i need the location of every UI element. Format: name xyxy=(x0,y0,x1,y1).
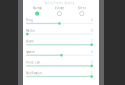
staticText: 7 xyxy=(91,40,93,43)
staticText: Notification xyxy=(26,71,42,75)
button[interactable]: Ring xyxy=(26,18,93,29)
button[interactable]: Silent xyxy=(71,6,93,16)
staticText: Voice Call xyxy=(26,61,40,64)
button[interactable]: Alarm xyxy=(26,39,93,50)
staticText: System xyxy=(26,50,34,54)
staticText: 0 xyxy=(91,29,93,32)
staticText: Normal xyxy=(33,6,42,10)
button[interactable]: Vibrate xyxy=(48,6,71,16)
staticText: Media xyxy=(26,29,34,32)
staticText: 5 xyxy=(91,61,93,64)
button[interactable]: System xyxy=(26,50,93,61)
button[interactable]: Voice Call xyxy=(26,61,93,71)
button[interactable]: Normal xyxy=(26,6,48,16)
staticText: Alarm xyxy=(26,40,33,43)
staticText: 4 xyxy=(91,18,93,22)
staticText: Select Profile Setting xyxy=(44,1,74,5)
staticText: 5 xyxy=(91,71,93,75)
staticText: Ring xyxy=(26,18,33,22)
staticText: Silent xyxy=(78,6,86,10)
button[interactable]: Notification xyxy=(26,71,93,82)
staticText: Vibrate xyxy=(54,6,64,10)
button[interactable]: Media xyxy=(26,29,93,39)
staticText: 4 xyxy=(91,50,93,54)
